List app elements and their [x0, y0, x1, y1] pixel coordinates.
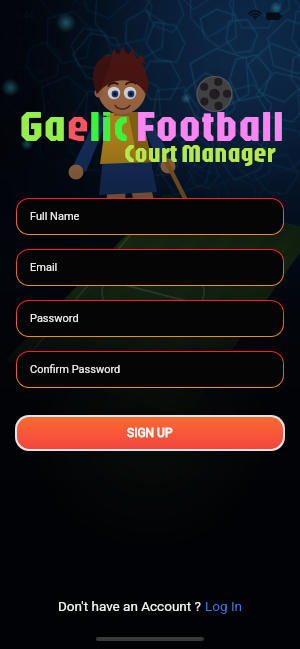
staticText: Don't have an Account ? — [58, 598, 205, 614]
button[interactable]: Full Name — [17, 199, 283, 234]
staticText: Full Name — [30, 210, 80, 223]
staticText: 1:46 — [14, 9, 36, 22]
staticText: SIGN UP — [127, 426, 173, 440]
button[interactable]: Confirm Password — [17, 352, 283, 387]
button[interactable]: Email — [17, 250, 283, 285]
staticText: Email — [30, 261, 58, 274]
button[interactable]: Log In — [205, 598, 243, 614]
button[interactable]: SIGN UP — [17, 417, 283, 449]
staticText: Court Manager — [124, 137, 276, 168]
button[interactable]: Password — [17, 301, 283, 336]
staticText: Password — [30, 312, 79, 325]
staticText: Confirm Password — [30, 363, 121, 376]
staticText: Gaelic Football — [19, 97, 285, 152]
